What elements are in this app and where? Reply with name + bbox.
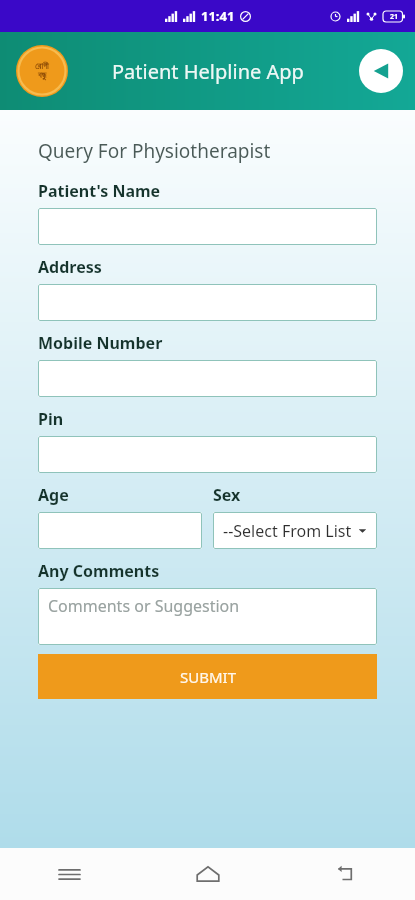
button[interactable]: SUBMIT [38, 654, 377, 699]
staticText: বন্ধু [38, 71, 47, 80]
staticText: Address [38, 256, 102, 278]
staticText: Patient Helpline App [112, 58, 304, 85]
staticText: Age [38, 484, 69, 506]
button[interactable]: Comments or Suggestion [38, 588, 377, 645]
staticText: SUBMIT [180, 667, 236, 687]
staticText: Sex [213, 484, 241, 506]
button[interactable]: Home [139, 848, 277, 900]
button[interactable]: Back [277, 848, 415, 900]
staticText: Mobile Number [38, 332, 163, 354]
button[interactable]: App logo [16, 45, 68, 97]
button[interactable] [38, 284, 377, 321]
button[interactable] [38, 208, 377, 245]
staticText: Any Comments [38, 560, 160, 582]
button[interactable]: Recent apps [0, 848, 139, 900]
staticText: --Select From List [223, 520, 358, 542]
button[interactable] [38, 436, 377, 473]
button[interactable] [38, 512, 202, 549]
button[interactable]: Back [359, 49, 403, 93]
staticText: Query For Physiotherapist [38, 138, 271, 164]
staticText: Comments or Suggestion [48, 595, 240, 617]
staticText: 11:41 [201, 7, 235, 25]
staticText: Patient's Name [38, 180, 161, 202]
button[interactable]: --Select From List [213, 512, 377, 549]
staticText: 21 [390, 12, 399, 22]
button[interactable] [38, 360, 377, 397]
staticText: রোগী [35, 62, 49, 71]
staticText: Pin [38, 408, 64, 430]
